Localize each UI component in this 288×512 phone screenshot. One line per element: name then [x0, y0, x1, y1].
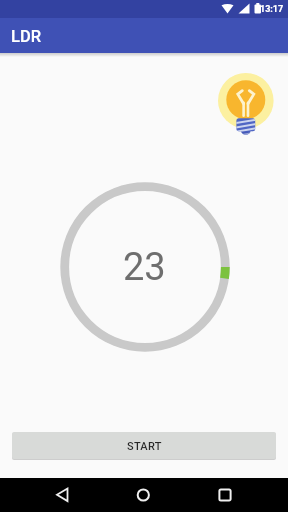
staticText: START: [127, 440, 162, 453]
staticText: 23: [123, 245, 166, 290]
button[interactable]: [40, 480, 84, 510]
staticText: LDR: [11, 27, 42, 46]
button[interactable]: [205, 480, 249, 510]
button[interactable]: [122, 480, 166, 510]
staticText: 13:17: [260, 4, 284, 15]
button[interactable]: START: [12, 432, 276, 459]
